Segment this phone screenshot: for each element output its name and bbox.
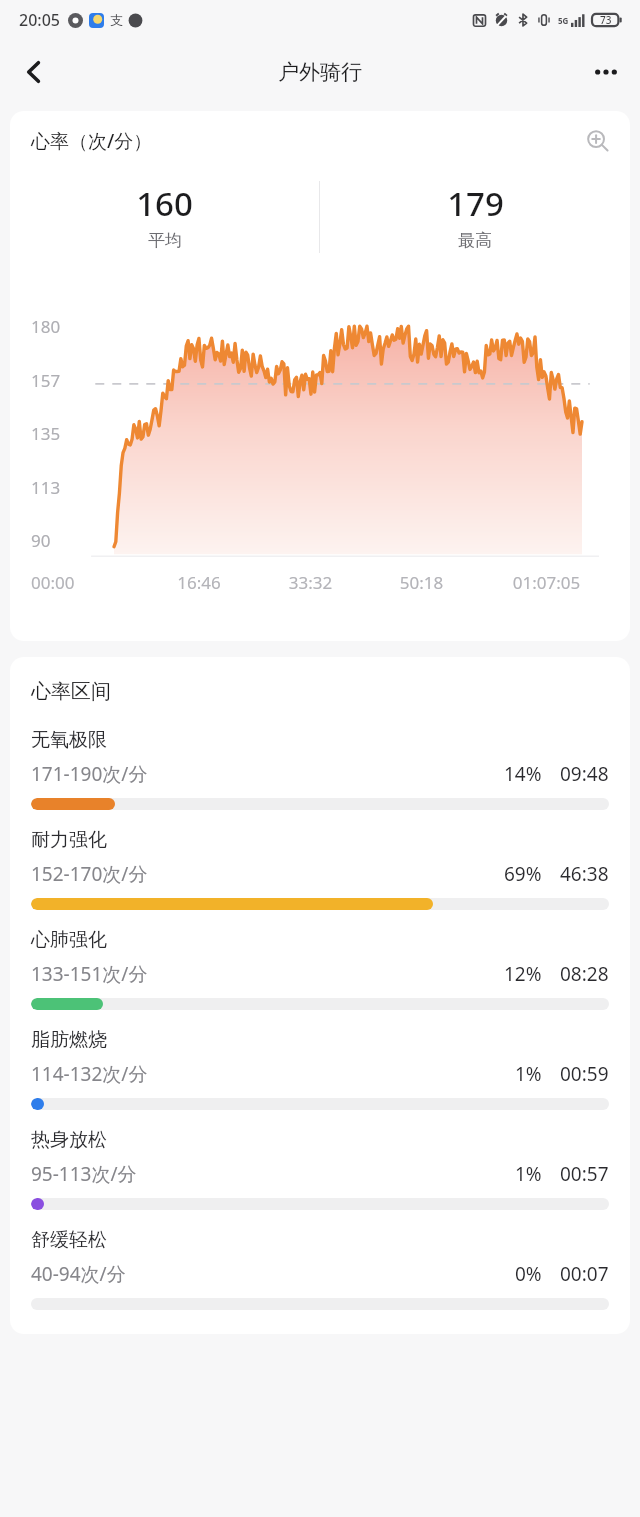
staticText: 舒缓轻松 bbox=[31, 1228, 107, 1252]
staticText: 1% bbox=[515, 1161, 542, 1187]
button[interactable]: Zoom in chart bbox=[580, 123, 616, 159]
staticText: 114-132次/分 bbox=[31, 1061, 148, 1087]
button[interactable]: 舒缓轻松 bbox=[10, 1220, 630, 1320]
staticText: 08:28 bbox=[560, 961, 609, 987]
staticText: 73 bbox=[600, 13, 612, 27]
staticText: 160 bbox=[136, 181, 193, 226]
staticText: 心肺强化 bbox=[31, 928, 107, 952]
staticText: 157 bbox=[31, 369, 61, 392]
staticText: 1% bbox=[515, 1061, 542, 1087]
staticText: 热身放松 bbox=[31, 1128, 107, 1152]
staticText: 00:07 bbox=[560, 1261, 609, 1287]
staticText: 180 bbox=[31, 315, 61, 338]
staticText: 心率（次/分） bbox=[31, 128, 153, 154]
staticText: 5G bbox=[558, 15, 569, 26]
staticText: 40-94次/分 bbox=[31, 1261, 126, 1287]
staticText: 09:48 bbox=[560, 761, 609, 787]
button[interactable]: 耐力强化 bbox=[10, 820, 630, 920]
staticText: 95-113次/分 bbox=[31, 1161, 137, 1187]
button[interactable]: 心肺强化 bbox=[10, 920, 630, 1020]
staticText: 46:38 bbox=[560, 861, 609, 887]
staticText: 33:32 bbox=[255, 571, 366, 594]
staticText: 00:00 bbox=[31, 571, 143, 594]
staticText: 脂肪燃烧 bbox=[31, 1028, 107, 1052]
staticText: 00:59 bbox=[560, 1061, 609, 1087]
staticText: 179 bbox=[447, 181, 504, 226]
staticText: 50:18 bbox=[366, 571, 477, 594]
staticText: 00:57 bbox=[560, 1161, 609, 1187]
staticText: 0% bbox=[515, 1261, 542, 1287]
staticText: 113 bbox=[31, 476, 61, 499]
staticText: 平均 bbox=[148, 230, 182, 251]
staticText: 171-190次/分 bbox=[31, 761, 148, 787]
staticText: 16:46 bbox=[143, 571, 255, 594]
staticText: 支 bbox=[110, 12, 123, 28]
staticText: 最高 bbox=[458, 230, 492, 251]
button[interactable]: Back bbox=[10, 48, 58, 96]
staticText: 12% bbox=[504, 961, 542, 987]
staticText: 14% bbox=[504, 761, 542, 787]
button[interactable]: More options bbox=[582, 48, 630, 96]
staticText: 户外骑行 bbox=[278, 59, 362, 85]
button[interactable]: 热身放松 bbox=[10, 1120, 630, 1220]
staticText: 90 bbox=[31, 529, 51, 552]
staticText: 01:07:05 bbox=[477, 571, 616, 594]
staticText: 无氧极限 bbox=[31, 728, 107, 752]
staticText: 135 bbox=[31, 422, 61, 445]
button[interactable]: 脂肪燃烧 bbox=[10, 1020, 630, 1120]
staticText: 耐力强化 bbox=[31, 828, 107, 852]
staticText: 133-151次/分 bbox=[31, 961, 148, 987]
staticText: 69% bbox=[504, 861, 542, 887]
staticText: 心率区间 bbox=[31, 679, 111, 704]
staticText: 20:05 bbox=[19, 9, 60, 31]
button[interactable]: 无氧极限 bbox=[10, 720, 630, 820]
staticText: 152-170次/分 bbox=[31, 861, 148, 887]
